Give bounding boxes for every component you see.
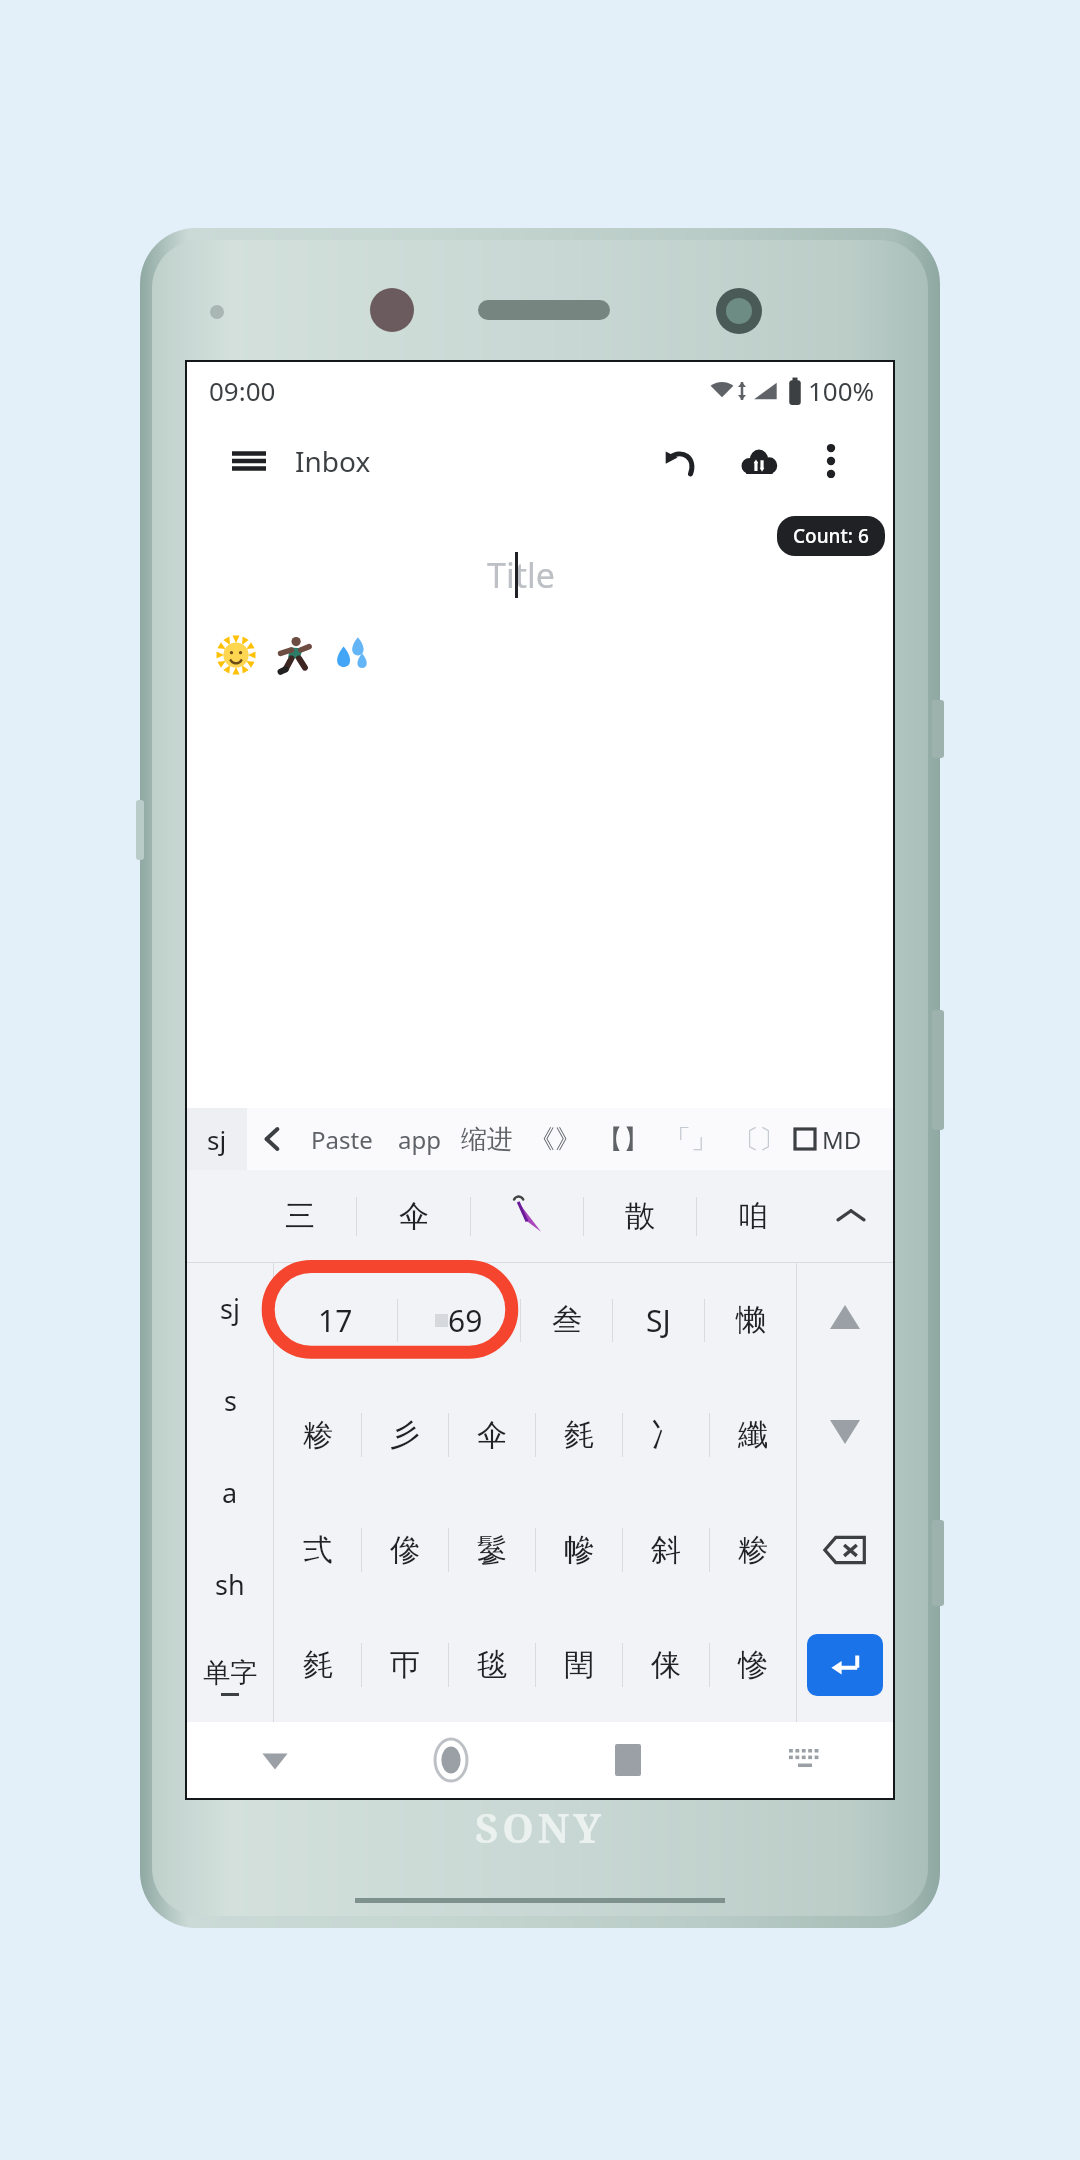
staticText: app: [398, 1123, 441, 1156]
staticText: 《》: [529, 1123, 581, 1156]
button[interactable]: 叁: [521, 1263, 612, 1377]
button[interactable]: 傪: [362, 1492, 448, 1607]
button[interactable]: 17: [274, 1263, 397, 1377]
button[interactable]: app: [385, 1108, 453, 1170]
staticText: sj: [207, 1122, 227, 1157]
button[interactable]: 伞: [357, 1170, 470, 1262]
staticText: MD: [822, 1123, 862, 1156]
staticText: SJ: [646, 1300, 671, 1341]
staticText: 17: [318, 1300, 353, 1341]
button[interactable]: Backspace: [797, 1492, 893, 1607]
button[interactable]: sh: [187, 1538, 273, 1630]
button[interactable]: 斜: [623, 1492, 709, 1607]
button[interactable]: 缩进: [453, 1108, 521, 1170]
button[interactable]: Enter: [807, 1634, 883, 1696]
staticText: 09:00: [209, 373, 276, 408]
button[interactable]: SJ: [613, 1263, 704, 1377]
staticText: 伞: [477, 1416, 507, 1454]
staticText: 单字: [203, 1656, 257, 1690]
staticText: 帀: [390, 1646, 420, 1684]
button[interactable]: Page up: [797, 1263, 893, 1377]
staticText: 懒: [736, 1301, 766, 1339]
button[interactable]: Paste: [299, 1108, 385, 1170]
button[interactable]: 帀: [362, 1607, 448, 1722]
staticText: 三: [285, 1197, 315, 1235]
button[interactable]: Count: 6: [777, 516, 885, 556]
staticText: 糁: [303, 1416, 333, 1454]
staticText: 毯: [477, 1646, 507, 1684]
staticText: sj: [220, 1290, 240, 1327]
staticText: 伞: [399, 1197, 429, 1235]
button[interactable]: 糁: [710, 1492, 796, 1607]
staticText: 彡: [390, 1416, 420, 1454]
staticText: sh: [215, 1566, 245, 1603]
button[interactable]: 冫: [623, 1377, 709, 1492]
button[interactable]: Undo: [655, 435, 707, 487]
button[interactable]: Recent apps: [539, 1722, 716, 1798]
staticText: 幓: [564, 1531, 594, 1569]
button[interactable]: MD: [793, 1108, 893, 1170]
button[interactable]: 伞: [449, 1377, 535, 1492]
button[interactable]: 【】: [589, 1108, 657, 1170]
staticText: Count: 6: [793, 523, 869, 549]
staticText: 毵: [303, 1646, 333, 1684]
staticText: 傪: [390, 1531, 420, 1569]
staticText: 69: [448, 1300, 483, 1341]
button[interactable]: Home: [363, 1722, 539, 1798]
button[interactable]: 毵: [274, 1607, 361, 1722]
button[interactable]: Collapse: [809, 1170, 893, 1262]
button[interactable]: 单字: [187, 1630, 273, 1722]
button[interactable]: 69: [398, 1263, 520, 1377]
staticText: 100%: [808, 373, 875, 408]
staticText: Title: [487, 552, 555, 598]
button[interactable]: 慘: [710, 1607, 796, 1722]
button[interactable]: 三: [243, 1170, 356, 1262]
button[interactable]: 纖: [710, 1377, 796, 1492]
button[interactable]: 鬖: [449, 1492, 535, 1607]
button[interactable]: a: [187, 1446, 273, 1538]
staticText: 俫: [651, 1646, 681, 1684]
staticText: 〔〕: [733, 1123, 785, 1156]
button[interactable]: Page down: [797, 1377, 893, 1492]
button[interactable]: 幓: [536, 1492, 622, 1607]
button[interactable]: 毵: [536, 1377, 622, 1492]
button[interactable]: [471, 1170, 583, 1262]
staticText: Paste: [311, 1123, 373, 1156]
button[interactable]: 懒: [705, 1263, 796, 1377]
button[interactable]: 《》: [521, 1108, 589, 1170]
button[interactable]: 俫: [623, 1607, 709, 1722]
staticText: 咱: [738, 1197, 768, 1235]
button[interactable]: 「」: [657, 1108, 725, 1170]
staticText: 毵: [564, 1416, 594, 1454]
staticText: 鬖: [477, 1531, 507, 1569]
staticText: 閏: [564, 1646, 594, 1684]
button[interactable]: 〔〕: [725, 1108, 793, 1170]
button[interactable]: Hide keyboard: [187, 1722, 363, 1798]
staticText: 慘: [738, 1646, 768, 1684]
button[interactable]: More options: [807, 437, 855, 485]
button[interactable]: 閏: [536, 1607, 622, 1722]
button[interactable]: 彡: [362, 1377, 448, 1492]
staticText: SONY: [475, 1800, 605, 1854]
staticText: 糁: [738, 1531, 768, 1569]
staticText: 纖: [738, 1416, 768, 1454]
button[interactable]: sj: [187, 1108, 247, 1170]
staticText: 【】: [597, 1123, 649, 1156]
button[interactable]: s: [187, 1354, 273, 1446]
button[interactable]: Sync: [733, 435, 785, 487]
staticText: 「」: [665, 1123, 717, 1156]
staticText: 缩进: [461, 1123, 513, 1156]
button[interactable]: sj: [187, 1263, 273, 1354]
button[interactable]: Open navigation menu: [225, 437, 273, 485]
button[interactable]: 弍: [274, 1492, 361, 1607]
button[interactable]: Switch keyboard: [716, 1722, 893, 1798]
button[interactable]: Back: [247, 1108, 299, 1170]
staticText: 冫: [651, 1416, 681, 1454]
staticText: 斜: [651, 1531, 681, 1569]
button[interactable]: 糁: [274, 1377, 361, 1492]
staticText: a: [222, 1474, 238, 1511]
button[interactable]: 散: [584, 1170, 696, 1262]
staticText: 叁: [552, 1301, 582, 1339]
button[interactable]: 毯: [449, 1607, 535, 1722]
button[interactable]: 咱: [697, 1170, 809, 1262]
